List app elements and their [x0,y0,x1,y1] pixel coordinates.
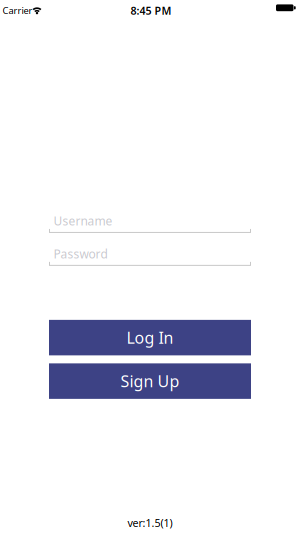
staticText: 8:45 PM [130,3,171,18]
staticText: Username [53,213,112,229]
button[interactable]: Password [49,246,251,266]
button[interactable]: Username [49,213,251,233]
staticText: Password [53,246,107,262]
staticText: ver:1.5(1) [127,516,172,530]
button[interactable]: Log In [49,320,251,355]
staticText: Log In [126,327,173,348]
staticText: Carrier [2,4,32,17]
button[interactable]: Sign Up [49,363,251,399]
staticText: Sign Up [120,370,179,392]
